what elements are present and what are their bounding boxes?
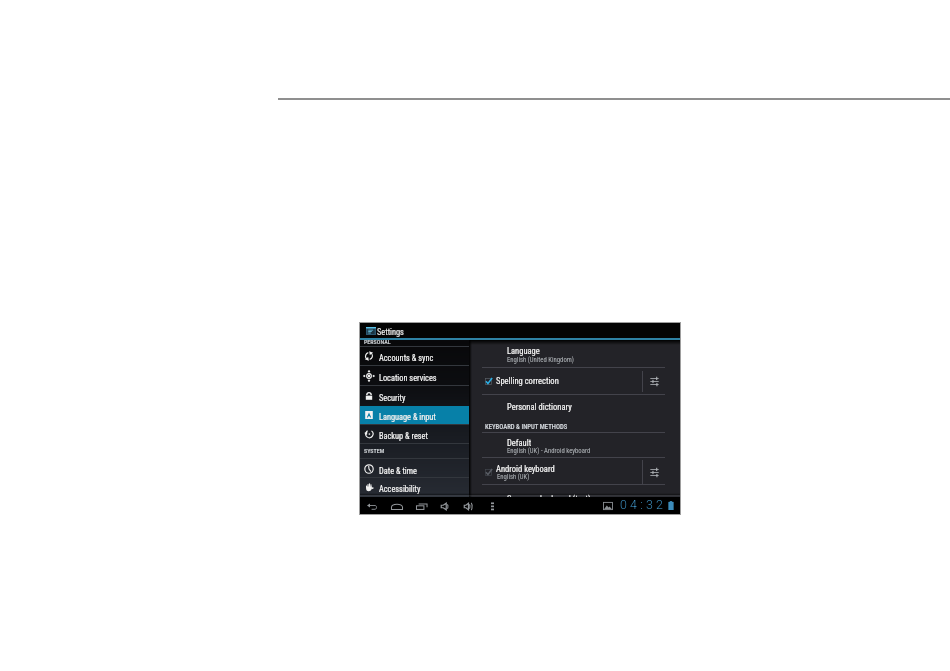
staticText: Accounts & sync xyxy=(379,353,434,363)
button[interactable]: Accessibility xyxy=(360,478,469,496)
staticText: Accessibility xyxy=(379,484,421,494)
button[interactable]: Menu xyxy=(483,497,502,514)
button[interactable]: Screenshot xyxy=(603,502,613,510)
button[interactable]: 04:32 xyxy=(620,497,667,512)
staticText: SYSTEM xyxy=(364,447,385,454)
staticText: English (UK) xyxy=(497,473,530,481)
staticText: Date & time xyxy=(379,466,417,476)
button[interactable]: Backup & reset xyxy=(360,425,469,443)
button[interactable]: Samsung keyboard (test) xyxy=(507,494,591,497)
button[interactable]: Personal dictionary xyxy=(507,402,572,412)
button[interactable]: Date & time xyxy=(360,459,469,478)
staticText: Location services xyxy=(379,373,437,383)
button[interactable]: Location services xyxy=(360,366,469,385)
button[interactable]: Language & input xyxy=(360,406,469,424)
staticText: KEYBOARD & INPUT METHODS xyxy=(485,423,568,431)
button[interactable]: Volume down xyxy=(435,497,454,514)
staticText: Security xyxy=(379,393,406,403)
button[interactable]: Accounts & sync xyxy=(360,347,469,365)
button[interactable]: Input method settings xyxy=(642,371,667,392)
button[interactable]: Volume up xyxy=(459,497,478,514)
button[interactable]: Spelling correction xyxy=(496,376,559,386)
staticText: Settings xyxy=(377,327,404,337)
button[interactable]: Security xyxy=(360,386,469,406)
staticText: PERSONAL xyxy=(364,340,391,345)
button[interactable]: Input method settings xyxy=(642,460,667,484)
button[interactable]: Default xyxy=(507,438,532,448)
button[interactable]: Recent apps xyxy=(412,497,431,514)
button[interactable]: Language xyxy=(507,346,540,356)
staticText: Backup & reset xyxy=(379,431,428,441)
button[interactable]: Back xyxy=(362,497,381,514)
button[interactable]: Android keyboard xyxy=(496,464,555,474)
staticText: Language & input xyxy=(379,412,436,422)
button[interactable]: Home xyxy=(387,497,406,514)
staticText: English (United Kingdom) xyxy=(507,356,574,364)
staticText: English (UK) - Android keyboard xyxy=(507,447,591,455)
